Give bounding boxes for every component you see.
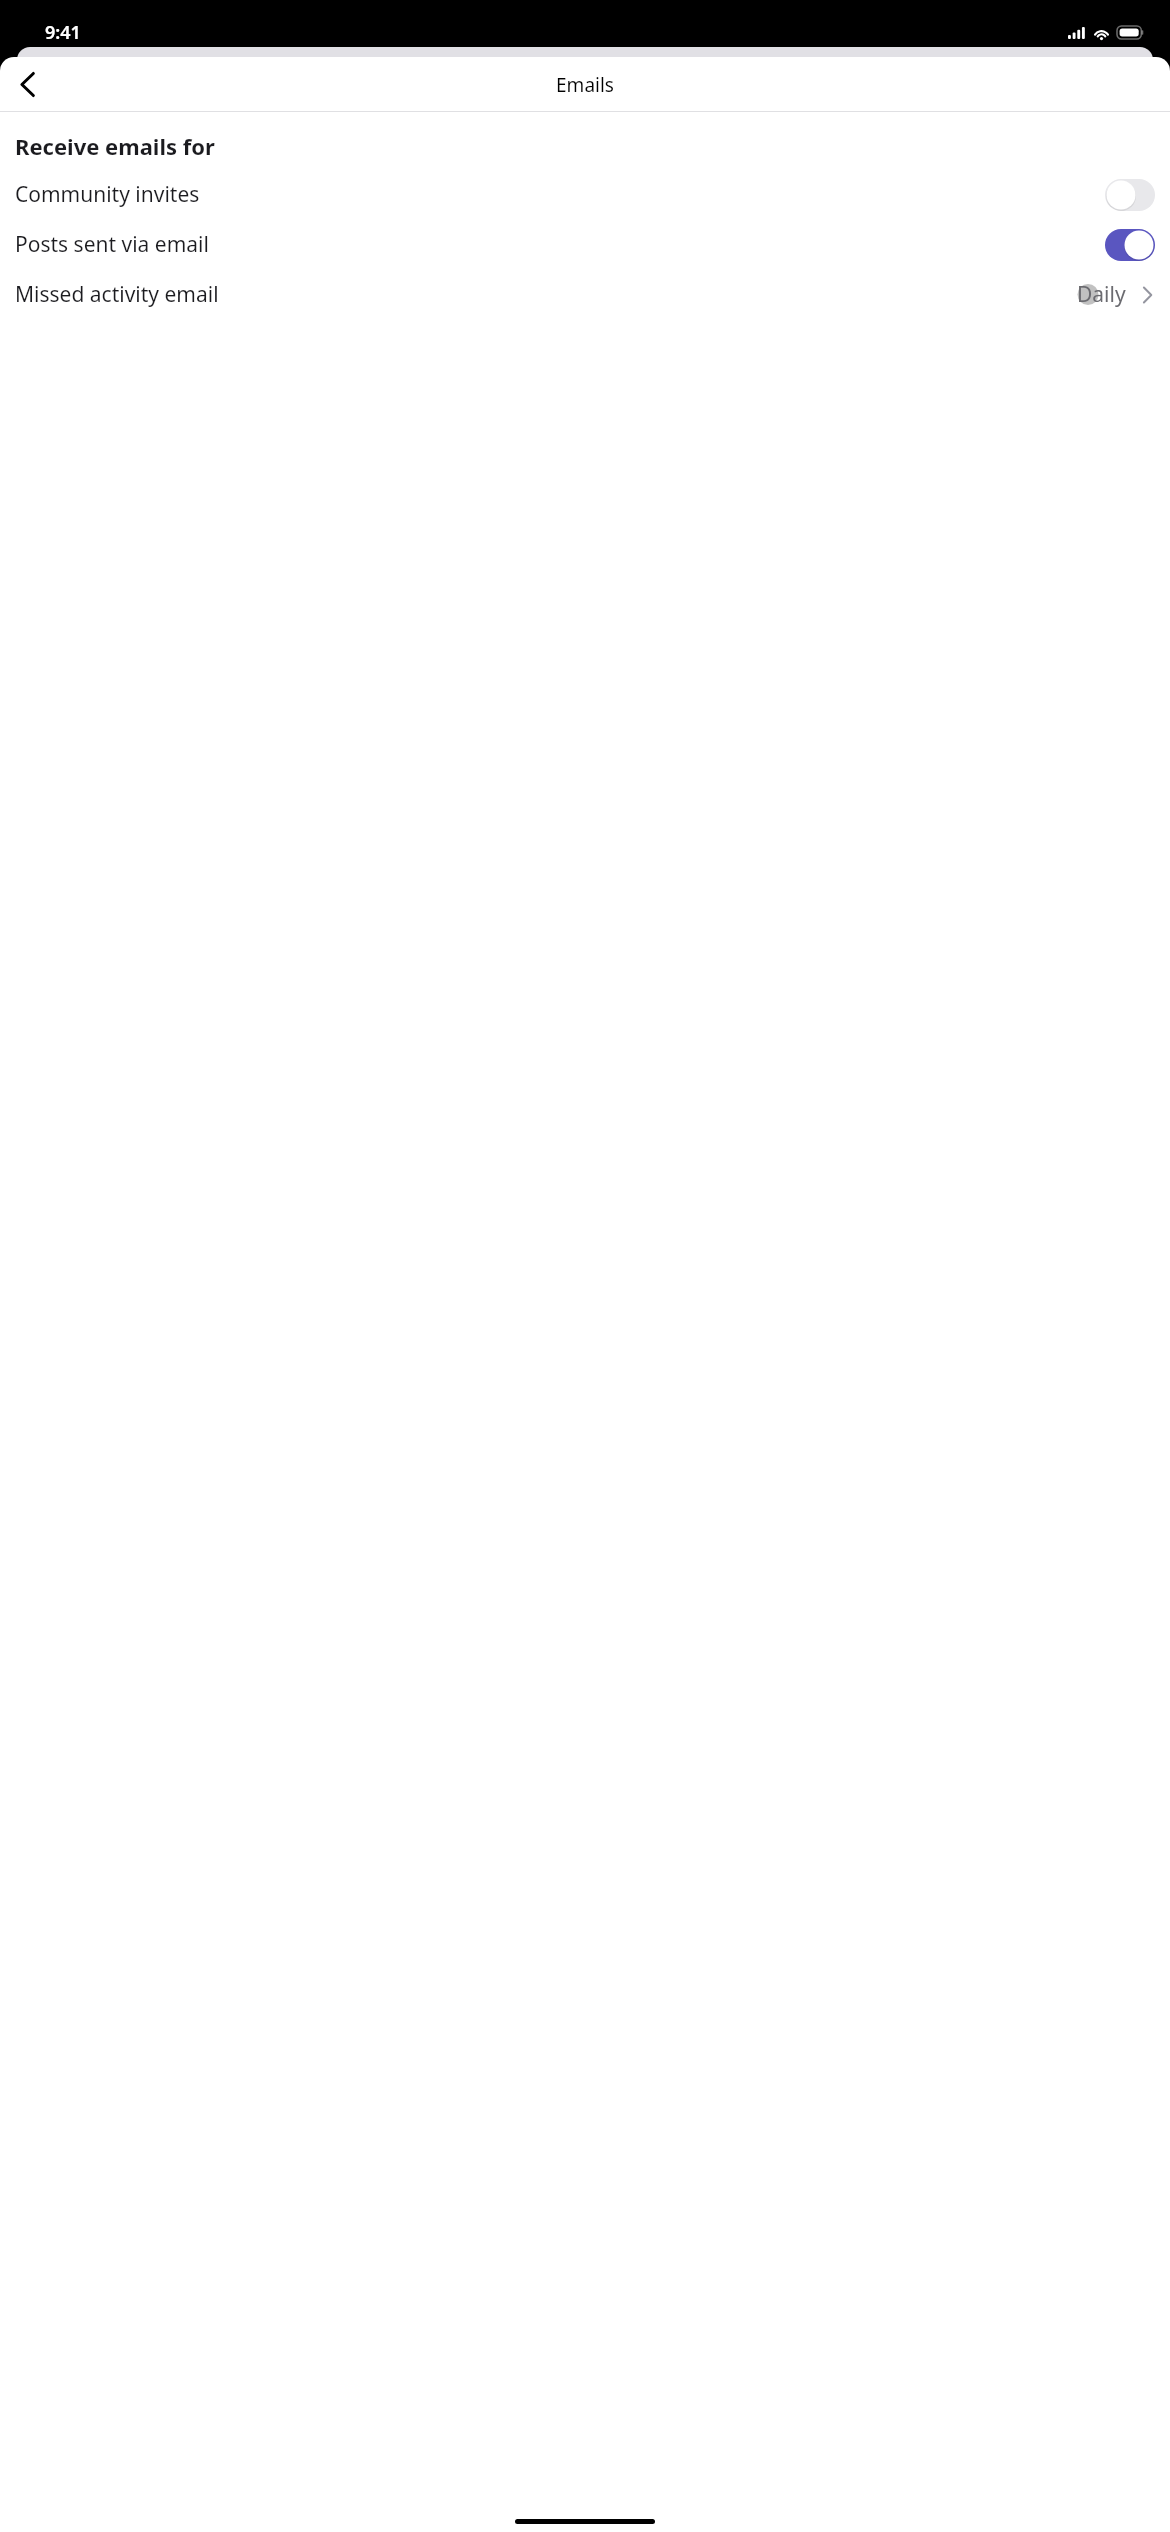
staticText: Receive emails for: [15, 131, 215, 161]
staticText: Posts sent via email: [15, 230, 1105, 259]
button[interactable]: Back: [0, 57, 54, 112]
button[interactable]: Missed activity email: [0, 278, 1170, 311]
button[interactable]: Community invites off: [1105, 179, 1155, 211]
button[interactable]: Posts sent via email on: [1105, 229, 1155, 261]
staticText: Missed activity email: [15, 280, 1077, 309]
staticText: Community invites: [15, 180, 1105, 209]
staticText: Daily: [1077, 280, 1126, 309]
staticText: 9:41: [45, 20, 81, 45]
staticText: Emails: [556, 72, 614, 98]
button[interactable]: Community invites: [0, 178, 1170, 211]
button[interactable]: Posts sent via email: [0, 228, 1170, 261]
